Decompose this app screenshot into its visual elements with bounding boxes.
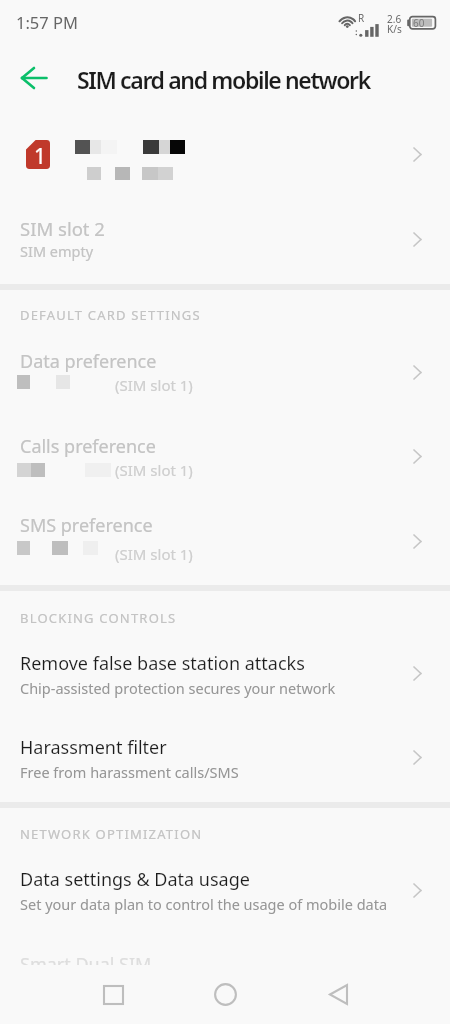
staticText: 60: [413, 16, 425, 30]
staticText: 2.6: [387, 12, 402, 26]
button[interactable]: Data preference: [0, 344, 450, 428]
staticText: Set your data plan to control the usage …: [20, 894, 388, 914]
button[interactable]: Harassment filter: [0, 729, 450, 813]
button[interactable]: Recent apps: [83, 965, 143, 1024]
staticText: BLOCKING CONTROLS: [20, 609, 177, 627]
button[interactable]: Home: [195, 965, 255, 1024]
staticText: (SIM slot 1): [115, 544, 193, 564]
staticText: Remove false base station attacks: [20, 651, 305, 676]
staticText: (SIM slot 1): [115, 375, 193, 395]
staticText: SIM card and mobile network: [77, 64, 370, 95]
button[interactable]: 1: [0, 113, 450, 196]
button[interactable]: SMS preference: [0, 508, 450, 592]
staticText: R: [358, 11, 365, 25]
staticText: K/s: [387, 22, 402, 36]
staticText: 1: [34, 142, 47, 171]
button[interactable]: Calls preference: [0, 429, 450, 513]
button[interactable]: Back: [11, 56, 57, 100]
staticText: Data preference: [20, 349, 157, 374]
staticText: SIM empty: [20, 241, 94, 261]
staticText: Data settings & Data usage: [20, 867, 250, 892]
staticText: SMS preference: [20, 513, 153, 538]
button[interactable]: SIM slot 2: [0, 196, 450, 283]
button[interactable]: Back: [308, 965, 368, 1024]
button[interactable]: Data settings & Data usage: [0, 861, 450, 945]
staticText: (SIM slot 1): [115, 460, 193, 480]
staticText: 1:57 PM: [16, 11, 78, 33]
staticText: Chip-assisted protection secures your ne…: [20, 678, 336, 698]
staticText: Calls preference: [20, 434, 156, 459]
staticText: SIM slot 2: [20, 216, 105, 241]
staticText: Free from harassment calls/SMS: [20, 762, 239, 782]
button[interactable]: Remove false base station attacks: [0, 645, 450, 729]
staticText: Harassment filter: [20, 735, 167, 760]
staticText: Smart Dual SIM: [20, 952, 152, 977]
staticText: DEFAULT CARD SETTINGS: [20, 306, 201, 324]
staticText: NETWORK OPTIMIZATION: [20, 825, 203, 843]
